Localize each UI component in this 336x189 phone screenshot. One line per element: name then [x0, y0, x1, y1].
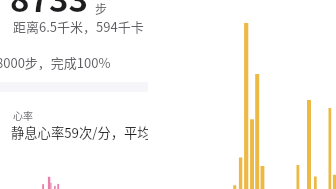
staticText: 目标8000步，完成100%: [0, 53, 111, 72]
button[interactable]: 心率: [0, 92, 148, 189]
button[interactable]: 8733: [0, 0, 336, 82]
staticText: 距离6.5千米，594千卡: [13, 17, 144, 36]
other: Activity and heart rate charts: [0, 0, 336, 189]
staticText: 静息心率59次/分，平均: [11, 123, 148, 142]
staticText: 心率: [13, 108, 33, 122]
staticText: 步: [95, 0, 108, 17]
staticText: 8733: [10, 0, 88, 22]
